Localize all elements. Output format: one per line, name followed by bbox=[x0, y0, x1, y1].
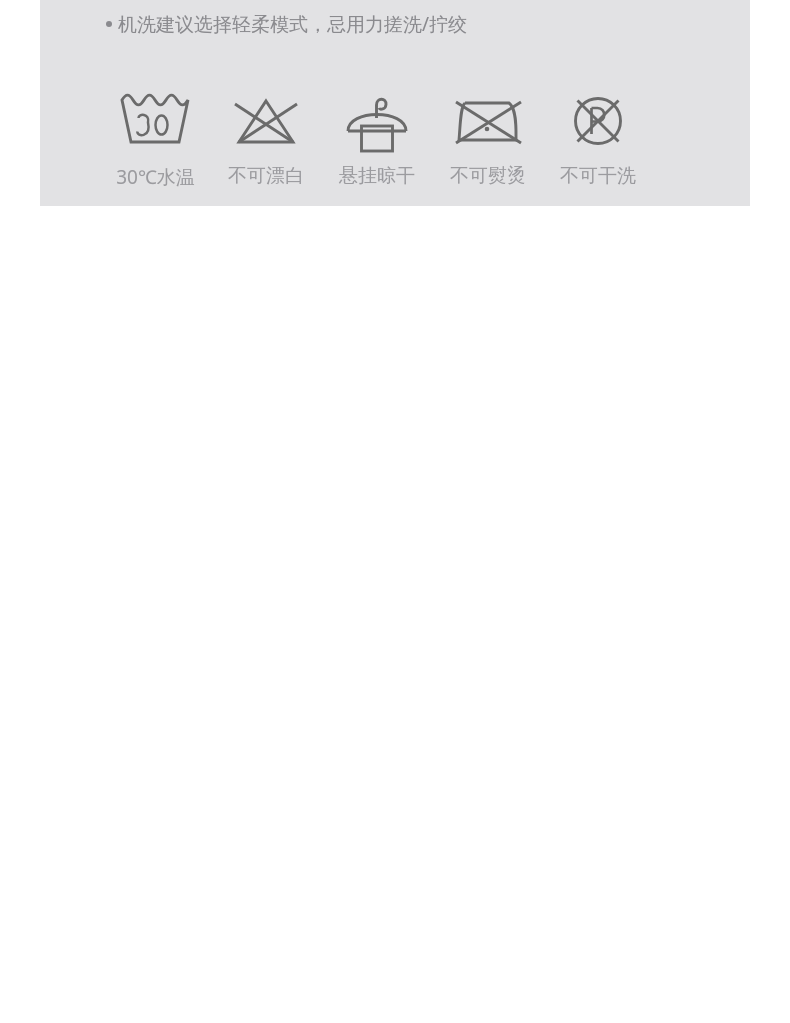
button[interactable]: Do not iron bbox=[435, 92, 541, 188]
button[interactable]: 机洗建议选择轻柔模式，忌用力搓洗/拧绞 bbox=[102, 11, 468, 37]
staticText: 不可漂白 bbox=[228, 164, 304, 188]
staticText: 30℃水温 bbox=[116, 164, 195, 190]
button[interactable]: Do not bleach bbox=[213, 92, 319, 188]
staticText: 不可熨烫 bbox=[450, 164, 526, 188]
staticText: 悬挂晾干 bbox=[339, 164, 415, 188]
button[interactable]: 30 degree wash bbox=[102, 92, 208, 190]
button[interactable]: Do not dry clean bbox=[545, 92, 651, 188]
staticText: 机洗建议选择轻柔模式，忌用力搓洗/拧绞 bbox=[118, 11, 468, 37]
button[interactable]: Line dry bbox=[324, 92, 430, 188]
staticText: 不可干洗 bbox=[560, 164, 636, 188]
